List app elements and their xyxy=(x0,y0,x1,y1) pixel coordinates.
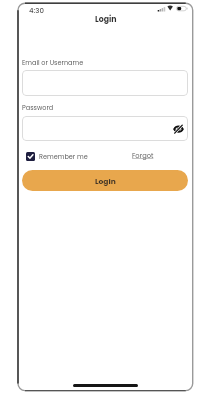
button[interactable]: Email or Username field xyxy=(22,70,188,96)
staticText: Login xyxy=(95,176,116,186)
staticText: Remember me xyxy=(39,152,88,161)
staticText: 4:30 xyxy=(29,6,44,16)
button[interactable]: Show password xyxy=(172,122,185,135)
button[interactable]: Forgot password? xyxy=(132,151,188,162)
staticText: Email or Username xyxy=(22,58,84,67)
staticText: Forgot password? xyxy=(132,151,188,162)
staticText: Password xyxy=(22,103,54,112)
button[interactable]: Login xyxy=(22,170,188,191)
button[interactable]: Password field xyxy=(22,116,188,141)
staticText: Login xyxy=(95,14,117,25)
button[interactable]: Remember me xyxy=(26,152,88,161)
